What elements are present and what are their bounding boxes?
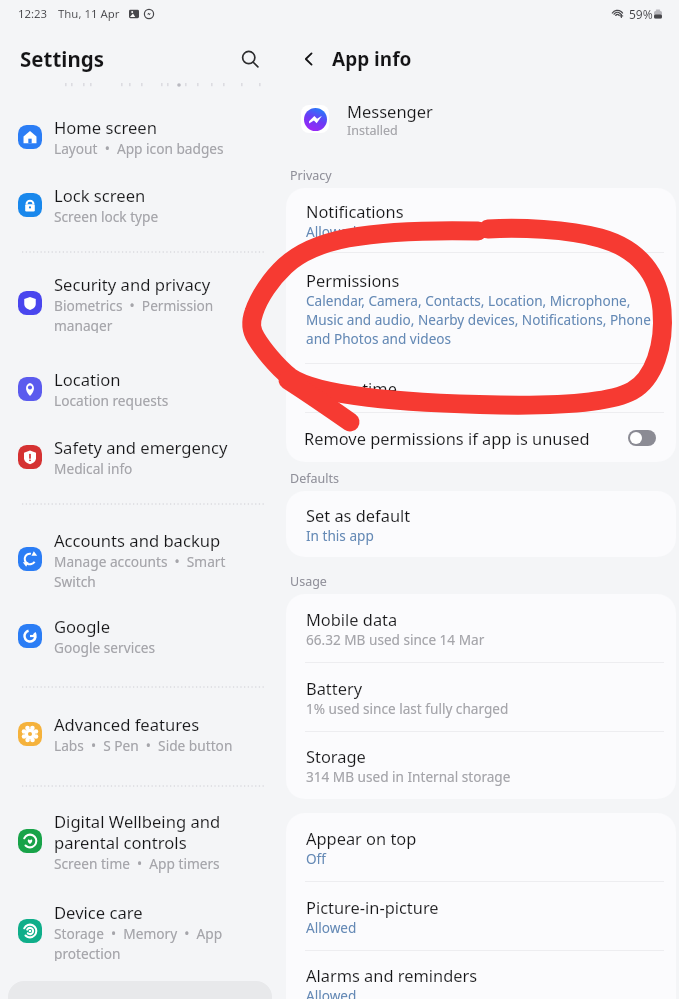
button[interactable]: Remove permissions if app is unused [286, 413, 676, 462]
staticText: Manage accounts • Smart Switch [54, 552, 226, 589]
staticText: 314 MB used in Internal storage [306, 767, 511, 786]
button[interactable]: Set as default [286, 491, 676, 557]
staticText: Biometrics • Permission manager [54, 296, 214, 333]
button[interactable]: Home screen [0, 107, 272, 167]
staticText: App info [332, 46, 412, 72]
staticText: Storage • Memory • App protection [54, 924, 223, 961]
staticText: Accounts and backup [54, 529, 221, 552]
button[interactable]: Accounts and backup [0, 529, 272, 589]
staticText: Installed [347, 122, 398, 139]
staticText: Screen time [306, 377, 397, 399]
staticText: Location [54, 368, 121, 391]
staticText: In this app [306, 526, 374, 545]
button[interactable]: Alarms and reminders [286, 951, 676, 999]
staticText: Notifications [306, 200, 404, 222]
staticText: Privacy [290, 167, 332, 184]
staticText: Home screen [54, 116, 157, 139]
button[interactable]: Digital Wellbeing and parental controls [0, 798, 272, 884]
button[interactable]: Battery [286, 663, 676, 731]
button[interactable]: Google [0, 606, 272, 666]
button[interactable]: Device care [0, 901, 272, 961]
staticText: Calendar, Camera, Contacts, Location, Mi… [306, 291, 656, 348]
button[interactable]: Security and privacy [0, 273, 272, 333]
staticText: Location requests [54, 391, 169, 410]
button[interactable]: Screen time [286, 364, 676, 412]
staticText: Google [54, 615, 111, 638]
staticText: Defaults [290, 470, 339, 487]
staticText: Screen lock type [54, 207, 159, 226]
staticText: Permissions [306, 269, 400, 291]
button[interactable]: Lock screen [0, 175, 272, 235]
button[interactable]: Notifications [286, 188, 676, 252]
staticText: Mobile data [306, 608, 398, 630]
staticText: Messenger [347, 100, 433, 122]
staticText: Remove permissions if app is unused [304, 427, 628, 449]
button[interactable]: Safety and emergency [0, 427, 272, 487]
button[interactable]: Picture-in-picture [286, 882, 676, 950]
staticText: Security and privacy [54, 273, 211, 296]
staticText: Usage [290, 573, 327, 590]
staticText: 1% used since last fully charged [306, 699, 509, 718]
staticText: Alarms and reminders [306, 964, 478, 986]
staticText: Allowed [306, 918, 357, 937]
staticText: Safety and emergency [54, 436, 228, 459]
staticText: Device care [54, 901, 143, 924]
staticText: Layout • App icon badges [54, 139, 224, 158]
staticText: Allowed [306, 986, 357, 999]
staticText: Screen time • App timers [54, 854, 220, 873]
button[interactable]: Messenger [272, 96, 572, 142]
staticText: Set as default [306, 504, 411, 526]
staticText: Appear on top [306, 827, 417, 849]
button[interactable]: Advanced features [0, 704, 272, 764]
staticText: Medical info [54, 459, 133, 478]
staticText: Allowed [306, 222, 357, 241]
staticText: Storage [306, 745, 366, 767]
button[interactable]: Permissions [286, 253, 676, 363]
staticText: Settings [20, 45, 105, 73]
staticText: Battery [306, 677, 363, 699]
staticText: Digital Wellbeing and parental controls [54, 810, 221, 854]
staticText: Thu, 11 Apr [58, 6, 120, 22]
staticText: Google services [54, 638, 156, 657]
button[interactable]: Location [0, 359, 272, 419]
staticText: 59% [629, 6, 653, 22]
staticText: Picture-in-picture [306, 896, 439, 918]
staticText: Lock screen [54, 184, 146, 207]
button[interactable]: Search [233, 42, 267, 76]
button[interactable]: Mobile data [286, 594, 676, 662]
staticText: 66.32 MB used since 14 Mar [306, 630, 485, 649]
staticText: Labs • S Pen • Side button [54, 736, 233, 755]
button[interactable]: Back [294, 44, 324, 74]
staticText: Advanced features [54, 713, 200, 736]
button[interactable]: Appear on top [286, 813, 676, 881]
staticText: 12:23 [18, 6, 48, 22]
staticText: Off [306, 849, 326, 868]
button[interactable]: Storage [286, 732, 676, 799]
